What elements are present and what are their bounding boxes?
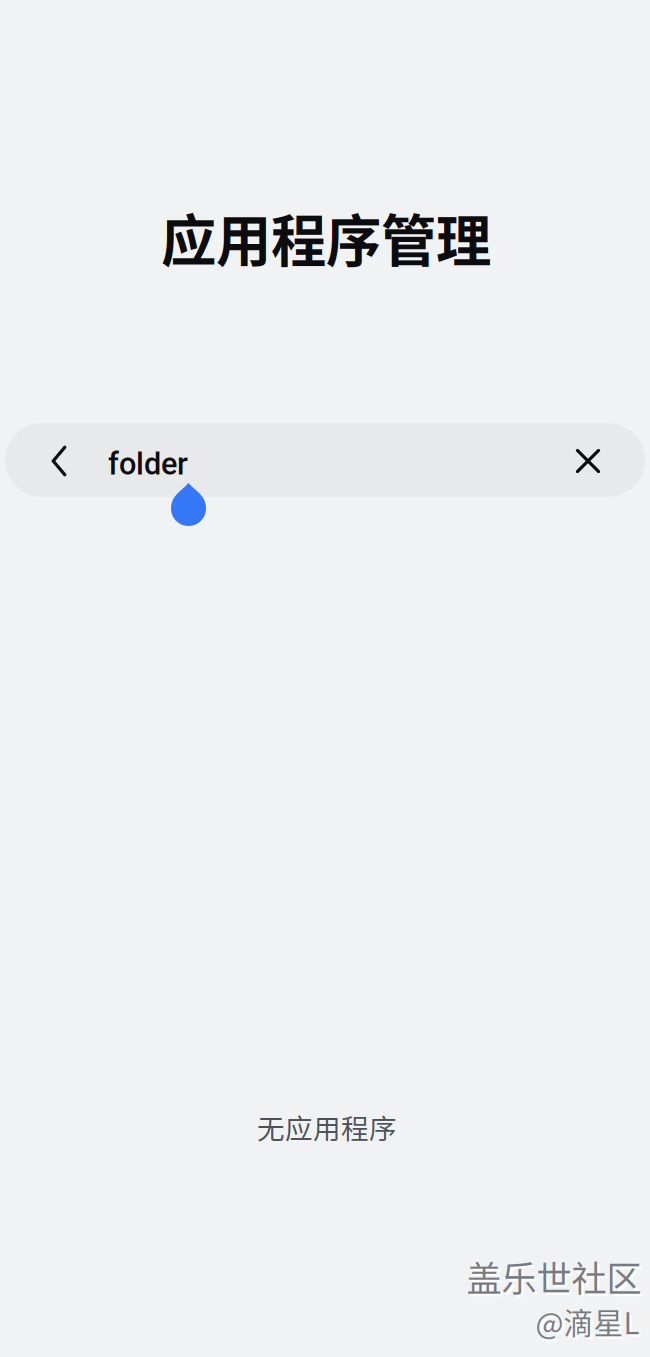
staticText: 盖乐世社区	[469, 1253, 644, 1304]
staticText: @滴星L	[535, 1300, 639, 1343]
staticText: 盖乐世社区	[466, 1251, 641, 1302]
staticText: 无应用程序	[257, 1107, 397, 1147]
staticText: folder	[108, 446, 188, 482]
button[interactable]: Back	[26, 424, 92, 498]
staticText: @滴星L	[538, 1302, 642, 1345]
staticText: 应用程序管理	[161, 197, 491, 277]
button[interactable]: folder	[108, 427, 408, 501]
button[interactable]: Clear search	[551, 424, 625, 498]
